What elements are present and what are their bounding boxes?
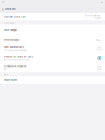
button[interactable]: Secure access: [0, 76, 105, 84]
button[interactable]: Voice changer: [0, 24, 105, 36]
staticText: ‹: [2, 7, 4, 11]
staticText: 9:41: [2, 2, 5, 3]
button[interactable]: Back: [2, 6, 4, 12]
staticText: More: [4, 74, 8, 76]
staticText: Off: [4, 68, 7, 70]
staticText: Disabled on reception: [4, 65, 26, 68]
staticText: Voice changer: [4, 29, 17, 32]
staticText: Automatically select: [85, 15, 101, 17]
staticText: ·ıl ᯤ ▰: [101, 1, 103, 3]
staticText: Preserve for others all calls: [4, 55, 33, 58]
staticText: Start automatically: [4, 46, 24, 48]
staticText: Everyone can see the recording: [4, 59, 29, 60]
button[interactable]: Preferred audio: [0, 36, 105, 44]
staticText: Start when the meeting begins: [4, 49, 27, 51]
staticText: Secure access: [4, 79, 17, 81]
staticText: Optional Quick Call: [4, 15, 26, 18]
button[interactable]: Start automatically: [0, 44, 105, 53]
button[interactable]: Disabled on reception: [0, 63, 105, 72]
button[interactable]: Optional Quick Call: [0, 13, 105, 20]
staticText: Preferred audio: [4, 39, 19, 41]
button[interactable]: Preserve for others all calls: [0, 53, 105, 63]
staticText: by quality: [94, 17, 101, 19]
staticText: Never: [96, 39, 101, 41]
staticText: Quick call: [5, 8, 16, 10]
staticText: Audio and video: [4, 22, 15, 24]
